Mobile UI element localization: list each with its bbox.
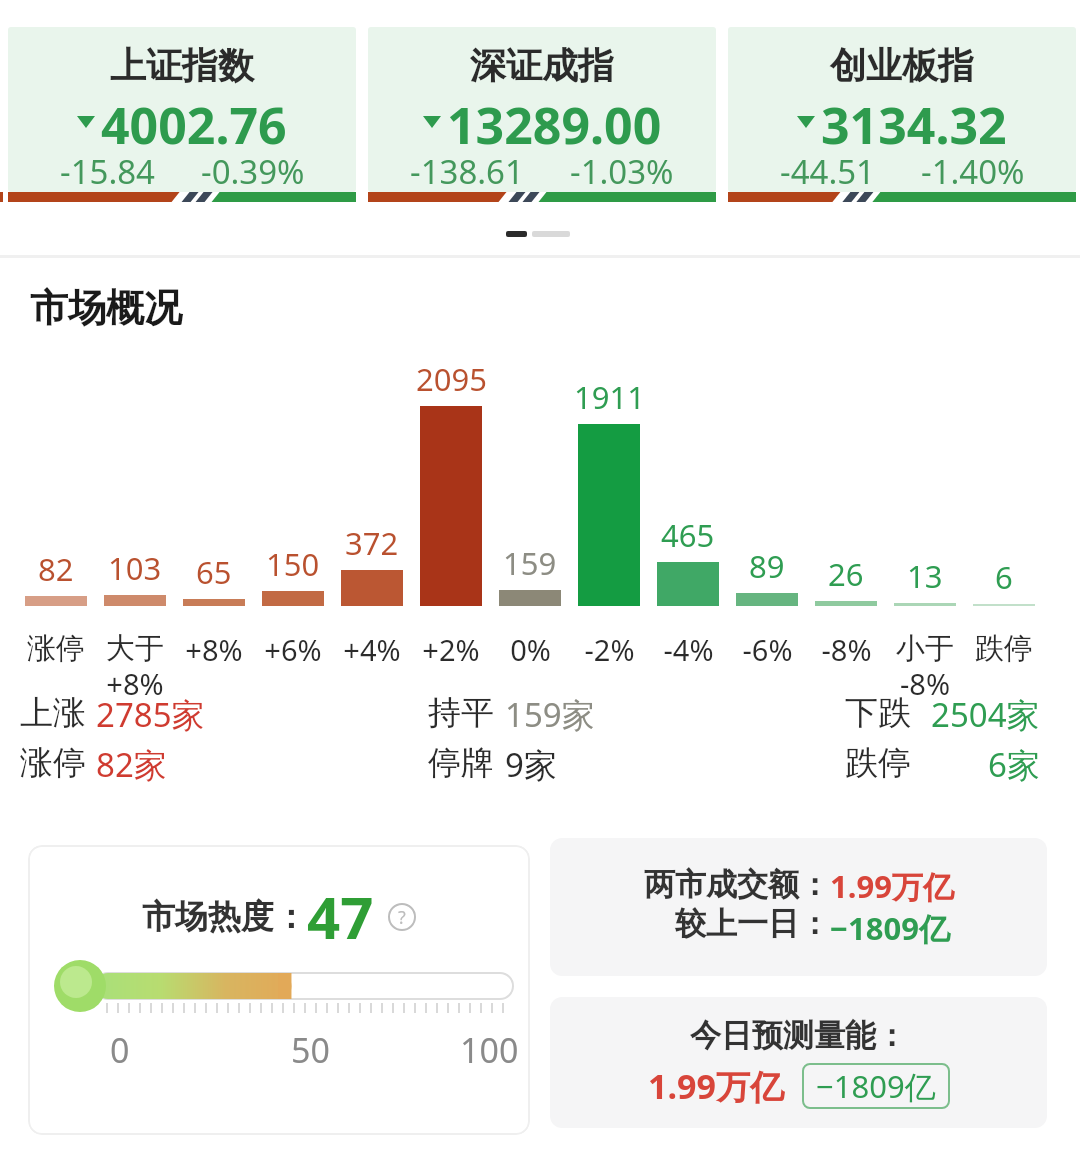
staticText: 较上一日： xyxy=(675,904,830,943)
staticText: -1.40% xyxy=(921,149,1025,192)
staticText: 89 xyxy=(749,545,785,587)
staticText: 82 xyxy=(38,548,74,590)
staticText: +6% xyxy=(264,630,322,669)
staticText: 跌停 xyxy=(845,742,911,784)
button[interactable]: 今日预测量能： xyxy=(550,997,1047,1128)
staticText: 涨停 xyxy=(20,742,86,784)
staticText: 跌停 xyxy=(975,630,1033,667)
staticText: 0% xyxy=(510,630,551,669)
staticText: 两市成交额： xyxy=(644,865,830,904)
staticText: 465 xyxy=(661,514,715,556)
staticText: 上涨 xyxy=(20,692,86,734)
staticText: 6家 xyxy=(988,742,1040,787)
staticText: 65 xyxy=(196,551,232,593)
staticText: 13 xyxy=(907,555,943,597)
staticText: 1.99万亿 xyxy=(648,1063,784,1109)
button[interactable]: 创业板指 xyxy=(728,27,1076,192)
staticText: 6 xyxy=(995,556,1013,598)
staticText: 今日预测量能： xyxy=(690,1016,907,1055)
staticText: 47 xyxy=(307,877,374,956)
staticText: +2% xyxy=(422,630,480,669)
button[interactable]: 深证成指 xyxy=(368,27,716,192)
button[interactable]: 市场热度： xyxy=(28,845,530,1135)
staticText: ? xyxy=(398,905,406,930)
staticText: 159 xyxy=(503,542,557,584)
staticText: -4% xyxy=(663,630,714,669)
staticText: 4002.76 xyxy=(101,91,287,151)
staticText: 持平 xyxy=(428,692,494,734)
staticText: -8% xyxy=(821,630,872,669)
staticText: -6% xyxy=(742,630,793,669)
staticText: 103 xyxy=(108,547,162,589)
button[interactable]: 上证指数 xyxy=(8,27,356,192)
staticText: 100 xyxy=(460,1027,519,1073)
staticText: 50 xyxy=(291,1027,330,1073)
staticText: 下跌 xyxy=(845,692,911,734)
staticText: −1809亿 xyxy=(816,1065,936,1107)
staticText: 创业板指 xyxy=(830,43,974,88)
staticText: -15.84 xyxy=(60,149,155,192)
staticText: 市场热度： xyxy=(142,896,307,938)
staticText: -0.39% xyxy=(201,149,305,192)
button[interactable]: 两市成交额： xyxy=(550,838,1047,976)
staticText: 372 xyxy=(345,522,399,564)
staticText: +8% xyxy=(185,630,243,669)
staticText: 大于 +8% xyxy=(106,630,164,704)
staticText: 停牌 xyxy=(428,742,494,784)
staticText: +4% xyxy=(343,630,401,669)
staticText: 深证成指 xyxy=(470,43,614,88)
staticText: 1.99万亿 xyxy=(830,865,954,907)
staticText: 82家 xyxy=(96,742,167,787)
staticText: -138.61 xyxy=(410,149,524,192)
staticText: 2785家 xyxy=(96,692,205,737)
staticText: 0 xyxy=(110,1027,130,1073)
staticText: 26 xyxy=(828,553,864,595)
staticText: 2504家 xyxy=(931,692,1040,737)
staticText: -44.51 xyxy=(780,149,875,192)
staticText: 上证指数 xyxy=(110,43,254,88)
staticText: 3134.32 xyxy=(821,91,1007,151)
staticText: -2% xyxy=(584,630,635,669)
staticText: 150 xyxy=(266,543,320,585)
staticText: 涨停 xyxy=(27,630,85,667)
staticText: 13289.00 xyxy=(447,91,662,151)
staticText: 159家 xyxy=(505,692,595,737)
staticText: −1809亿 xyxy=(830,907,950,949)
staticText: 1911 xyxy=(574,376,645,418)
staticText: 2095 xyxy=(416,358,487,400)
staticText: -1.03% xyxy=(570,149,674,192)
staticText: 9家 xyxy=(505,742,557,787)
staticText: 小于 -8% xyxy=(896,630,954,704)
staticText: 市场概况 xyxy=(30,284,182,332)
